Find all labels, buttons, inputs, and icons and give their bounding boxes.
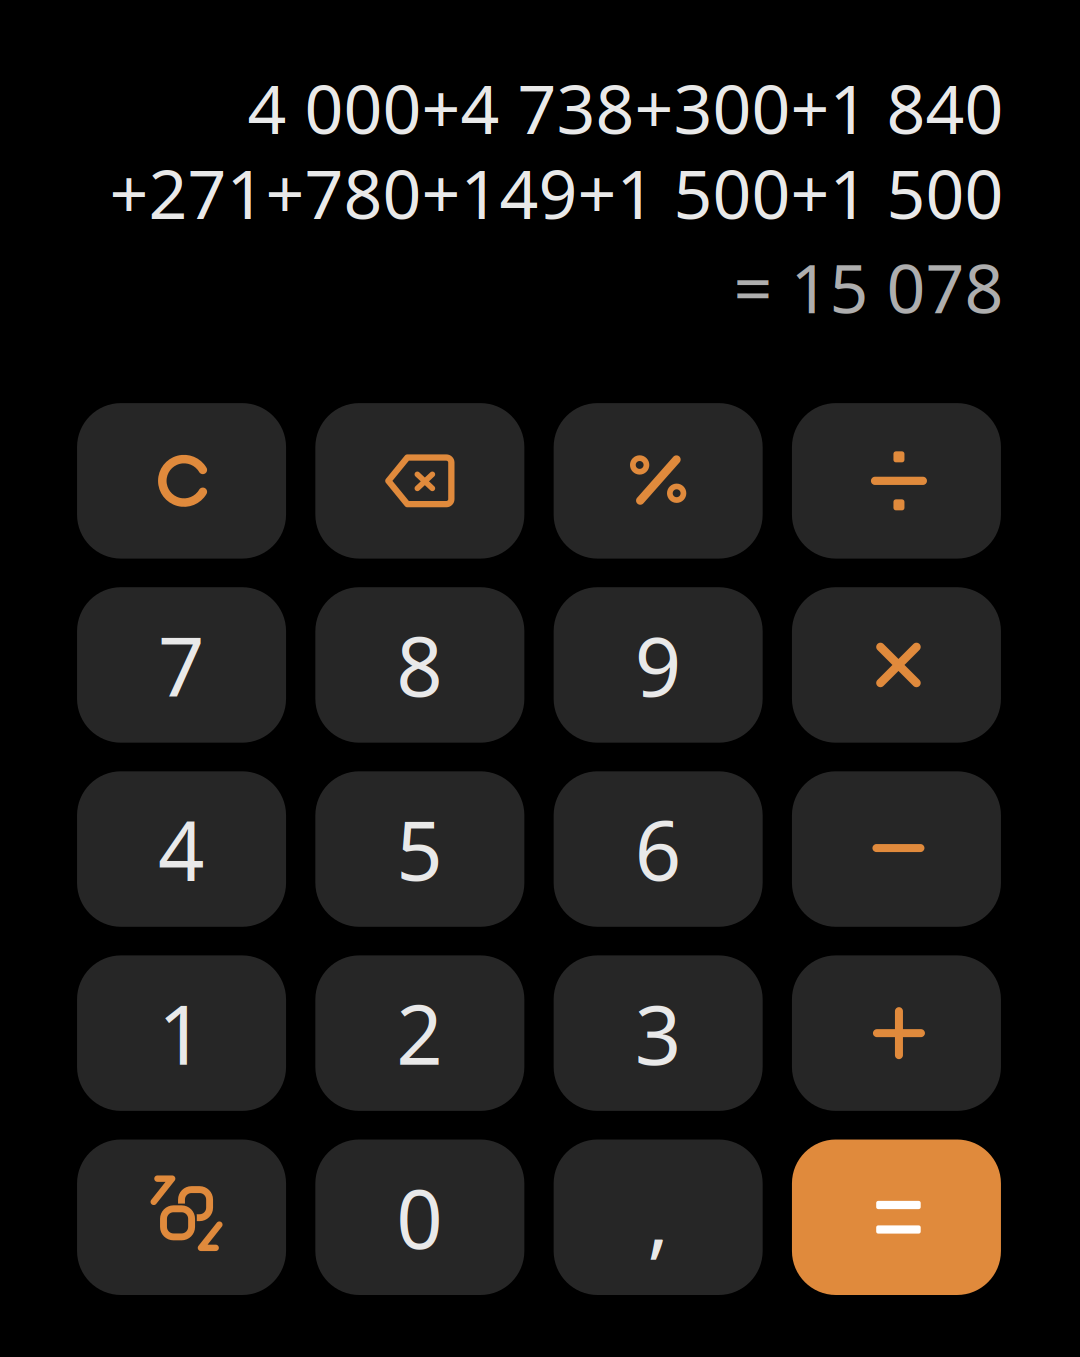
button[interactable]: 2 bbox=[315, 955, 524, 1111]
button[interactable]: Divide bbox=[792, 403, 1001, 559]
button[interactable]: 5 bbox=[315, 771, 524, 927]
button[interactable]: 0 bbox=[315, 1139, 524, 1295]
button[interactable]: 8 bbox=[315, 587, 524, 743]
staticText: , bbox=[647, 1163, 669, 1271]
staticText: 1 bbox=[158, 979, 205, 1087]
button[interactable]: Delete bbox=[315, 403, 524, 559]
button[interactable]: Multiply bbox=[792, 587, 1001, 743]
button[interactable]: 6 bbox=[554, 771, 763, 927]
staticText: 0 bbox=[396, 1163, 443, 1271]
staticText: +271+780+149+1 500+1 500 bbox=[109, 147, 1003, 238]
button[interactable]: , bbox=[554, 1139, 763, 1295]
button[interactable]: 7 bbox=[77, 587, 286, 743]
button[interactable]: 4 bbox=[77, 771, 286, 927]
staticText: 9 bbox=[635, 611, 682, 719]
staticText: 5 bbox=[396, 795, 443, 903]
staticText: = 15 078 bbox=[733, 242, 1003, 332]
staticText: 7 bbox=[158, 611, 205, 719]
button[interactable]: 1 bbox=[77, 955, 286, 1111]
staticText: 4 000+4 738+300+1 840 bbox=[247, 62, 1003, 153]
button[interactable]: Add bbox=[792, 955, 1001, 1111]
button[interactable]: Clear bbox=[77, 403, 286, 559]
staticText: 3 bbox=[635, 979, 682, 1087]
button[interactable]: Percent bbox=[554, 403, 763, 559]
button[interactable]: 9 bbox=[554, 587, 763, 743]
button[interactable]: Convert units bbox=[77, 1139, 286, 1295]
button[interactable]: 3 bbox=[554, 955, 763, 1111]
button[interactable]: Subtract bbox=[792, 771, 1001, 927]
staticText: 2 bbox=[396, 979, 443, 1087]
button[interactable]: Equals bbox=[792, 1139, 1001, 1295]
staticText: 4 bbox=[158, 795, 205, 903]
staticText: 6 bbox=[635, 795, 682, 903]
staticText: 8 bbox=[396, 611, 443, 719]
